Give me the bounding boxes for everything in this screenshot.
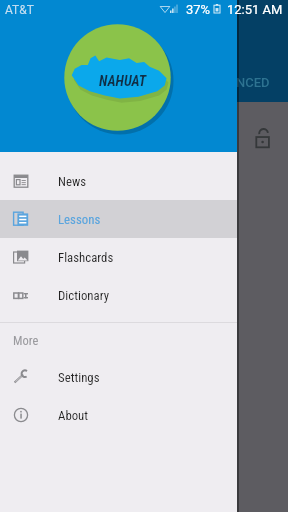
- other: Dictionary: [13, 287, 29, 303]
- staticText: Flashcards: [58, 250, 114, 265]
- staticText: About: [58, 408, 89, 423]
- staticText: Lessons: [58, 212, 101, 227]
- staticText: News: [58, 174, 87, 189]
- staticText: NCED: [236, 75, 270, 90]
- other: About: [13, 407, 29, 423]
- button[interactable]: Flashcards: [0, 238, 237, 276]
- button[interactable]: Settings: [0, 358, 237, 396]
- staticText: 37%: [186, 2, 211, 17]
- other: Flashcards: [13, 249, 29, 265]
- other: Lessons: [13, 211, 29, 227]
- other: Settings: [13, 369, 29, 385]
- button[interactable]: Dictionary: [0, 276, 237, 314]
- button[interactable]: Lessons: [0, 200, 237, 238]
- staticText: 12:51 AM: [227, 2, 283, 17]
- staticText: More: [13, 333, 39, 348]
- staticText: Settings: [58, 370, 100, 385]
- button[interactable]: News: [0, 162, 237, 200]
- other: News: [13, 173, 29, 189]
- staticText: NAHUAT: [99, 73, 147, 89]
- other: Locked: [255, 128, 272, 149]
- staticText: AT&T: [5, 3, 34, 17]
- staticText: Dictionary: [58, 288, 109, 303]
- button[interactable]: About: [0, 396, 237, 434]
